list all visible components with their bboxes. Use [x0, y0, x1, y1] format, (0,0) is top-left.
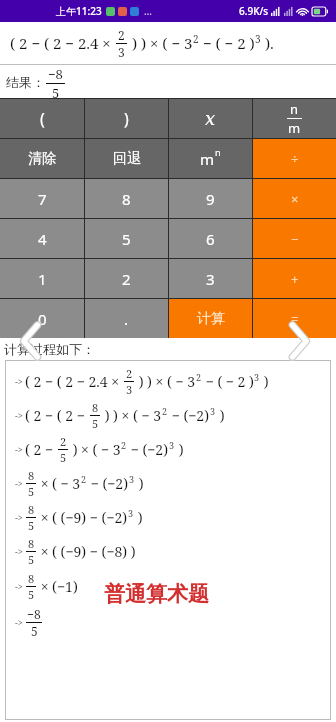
staticText: ( 2 − ( 2 − 2.4 × [10, 33, 115, 53]
staticText: × (−1) [37, 577, 78, 596]
staticText: × ( (−9) − (−8) ) [37, 542, 136, 561]
staticText: 5 [31, 623, 38, 639]
button[interactable]: Equals [253, 299, 336, 338]
button[interactable]: 7 [0, 179, 84, 218]
staticText: 3 [118, 44, 125, 60]
staticText: 5 [92, 416, 99, 431]
staticText: ) ) × ( − 3 [128, 33, 193, 53]
staticText: ) [260, 372, 269, 391]
staticText: ) [124, 108, 129, 130]
staticText: 2 [121, 439, 127, 451]
staticText: 2 [118, 27, 125, 43]
button[interactable]: 1 [0, 259, 84, 298]
staticText: n [290, 100, 299, 118]
button[interactable]: 计算 [169, 299, 252, 338]
staticText: 1 [38, 269, 47, 289]
staticText: 3 [254, 371, 260, 383]
staticText: m [288, 119, 301, 137]
staticText: × ( (−9) − (−2) [37, 508, 128, 527]
staticText: -> [15, 580, 23, 592]
staticText: 3 [126, 382, 133, 397]
button[interactable]: Fraction n over m [253, 99, 336, 138]
button[interactable]: 6 [169, 219, 252, 258]
staticText: 8 [28, 502, 35, 517]
staticText: -> [15, 477, 23, 489]
button[interactable]: 9 [169, 179, 252, 218]
staticText: 普通算术题 [104, 581, 209, 607]
button[interactable]: ) [85, 99, 168, 138]
button[interactable]: 0 [0, 299, 84, 338]
staticText: 上午11:23 [56, 4, 102, 18]
staticText: 回退 [113, 150, 141, 168]
staticText: 8 [122, 189, 131, 209]
button[interactable]: Divide [253, 139, 336, 178]
staticText: -> [15, 443, 23, 455]
staticText: 6.9K/s [239, 4, 269, 18]
staticText: −8 [48, 65, 63, 83]
staticText: ) ) × ( − 3 [101, 406, 162, 425]
staticText: 结果： [6, 74, 45, 90]
staticText: 6 [206, 229, 215, 249]
staticText: 2 [162, 405, 168, 417]
staticText: ) [135, 474, 144, 493]
other: Back gesture hint [18, 320, 44, 362]
staticText: -> [15, 545, 23, 557]
staticText: 2 [196, 371, 202, 383]
staticText: 8 [28, 468, 35, 483]
staticText: 2 [126, 366, 133, 381]
staticText: -> [15, 616, 23, 628]
button[interactable]: 2 [85, 259, 168, 298]
staticText: 3 [128, 507, 134, 519]
button[interactable]: Multiply [253, 179, 336, 218]
staticText: ). [261, 33, 274, 53]
button[interactable]: Power m to the n [169, 139, 252, 178]
staticText: 3 [255, 32, 261, 46]
staticText: 8 [28, 571, 35, 586]
staticText: 计算过程如下： [4, 341, 95, 357]
staticText: = [291, 310, 299, 328]
button[interactable]: 5 [85, 219, 168, 258]
staticText: 5 [52, 84, 60, 98]
staticText: ) [175, 440, 184, 459]
staticText: ÷ [291, 150, 299, 168]
staticText: 5 [28, 552, 35, 567]
button[interactable]: Add [253, 259, 336, 298]
staticText: − (−2) [87, 474, 129, 493]
staticText: 3 [206, 269, 215, 289]
staticText: 计算 [197, 310, 225, 328]
staticText: 5 [28, 518, 35, 533]
button[interactable]: Subtract [253, 219, 336, 258]
staticText: 8 [28, 536, 35, 551]
staticText: 7 [38, 189, 47, 209]
staticText: 5 [28, 484, 35, 499]
staticText: − (−2) [127, 440, 169, 459]
staticText: 3 [169, 439, 175, 451]
staticText: ) ) × ( − 3 [135, 372, 196, 391]
staticText: -> [15, 511, 23, 523]
staticText: 5 [122, 229, 131, 249]
button[interactable]: 4 [0, 219, 84, 258]
button[interactable]: . [85, 299, 168, 338]
staticText: ( 2 − ( 2 − [25, 406, 89, 425]
button[interactable]: 3 [169, 259, 252, 298]
button[interactable]: 清除 [0, 139, 84, 178]
button[interactable]: ( [0, 99, 84, 138]
staticText: 清除 [28, 150, 56, 168]
staticText: ) [134, 508, 143, 527]
staticText: + [291, 270, 299, 288]
staticText: 5 [28, 587, 35, 602]
staticText: ) [216, 406, 225, 425]
staticText: -> [15, 409, 23, 421]
button[interactable]: 8 [85, 179, 168, 218]
button[interactable]: Variable x [169, 99, 252, 138]
staticText: 0 [38, 309, 47, 329]
staticText: m [200, 149, 215, 169]
staticText: × [291, 190, 299, 208]
staticText: n [215, 146, 221, 158]
staticText: 2 [81, 473, 87, 485]
staticText: −8 [27, 606, 41, 622]
staticText: − ( − 2 ) [199, 33, 255, 53]
staticText: − [291, 230, 299, 248]
staticText: 2 [60, 434, 67, 449]
button[interactable]: 回退 [85, 139, 168, 178]
